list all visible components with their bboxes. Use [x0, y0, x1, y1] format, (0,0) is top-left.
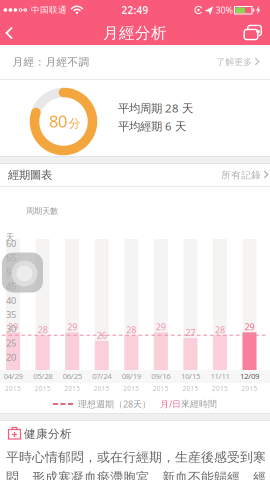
- staticText: 07/24: [92, 371, 111, 381]
- staticText: 30%: [215, 4, 232, 16]
- staticText: 10/15: [181, 371, 200, 381]
- staticText: 29: [156, 321, 166, 333]
- staticText: 悶，形成寒凝血瘀滯胞宮，新血不能歸經，經: [6, 469, 266, 480]
- staticText: 所有記錄: [221, 169, 261, 181]
- staticText: 2015: [5, 384, 21, 393]
- staticText: 29: [244, 321, 254, 333]
- button[interactable]: 了解更多: [216, 56, 260, 68]
- staticText: 26: [97, 329, 107, 341]
- staticText: 29: [67, 321, 77, 333]
- staticText: 2015: [241, 384, 257, 393]
- staticText: 06/25: [63, 371, 82, 381]
- staticText: 2015: [123, 384, 139, 393]
- staticText: 40: [6, 294, 16, 307]
- button[interactable]: Share: [234, 19, 266, 47]
- staticText: 理想週期（28天）: [78, 398, 151, 410]
- staticText: 55: [6, 251, 16, 264]
- staticText: 25: [6, 337, 16, 349]
- staticText: 09/16: [151, 371, 170, 381]
- staticText: 2015: [35, 384, 51, 393]
- staticText: 來經時間: [181, 398, 217, 410]
- staticText: 健康分析: [24, 427, 72, 441]
- staticText: 20: [6, 351, 16, 363]
- button[interactable]: Back: [0, 19, 26, 47]
- staticText: 平均經期 6 天: [118, 118, 186, 134]
- staticText: 35: [6, 308, 16, 321]
- staticText: 28: [215, 324, 225, 336]
- staticText: 2015: [153, 384, 169, 393]
- staticText: 周期天數: [26, 206, 58, 216]
- staticText: 2015: [182, 384, 198, 393]
- staticText: 22:49: [121, 3, 148, 17]
- staticText: 28: [126, 324, 136, 336]
- staticText: 2015: [94, 384, 110, 393]
- staticText: 05/28: [33, 371, 52, 381]
- staticText: 2015: [64, 384, 80, 393]
- staticText: 天: [5, 231, 14, 243]
- staticText: 了解更多: [216, 56, 252, 68]
- staticText: 平均周期 28 天: [118, 100, 193, 116]
- staticText: 月/日: [160, 398, 181, 410]
- staticText: 30: [6, 322, 16, 335]
- staticText: 2015: [212, 384, 228, 393]
- staticText: 月經分析: [103, 23, 167, 43]
- staticText: 80: [49, 110, 67, 132]
- staticText: 11/11: [210, 371, 229, 381]
- staticText: 50: [6, 266, 16, 278]
- staticText: 12/09: [240, 371, 259, 381]
- staticText: 月經：月經不調: [12, 55, 89, 69]
- staticText: 04/29: [4, 371, 23, 381]
- staticText: 平時心情郁悶，或在行經期，生産後感受到寒: [6, 449, 266, 465]
- staticText: 08/19: [122, 371, 141, 381]
- staticText: 60: [6, 237, 16, 250]
- staticText: 經期圖表: [8, 168, 52, 182]
- staticText: 27: [185, 326, 195, 339]
- staticText: 分: [68, 116, 80, 131]
- staticText: 45: [6, 280, 16, 292]
- button[interactable]: 所有記錄: [221, 169, 269, 181]
- staticText: 中国联通: [31, 5, 67, 15]
- staticText: 28: [38, 324, 48, 336]
- staticText: 29: [8, 321, 18, 333]
